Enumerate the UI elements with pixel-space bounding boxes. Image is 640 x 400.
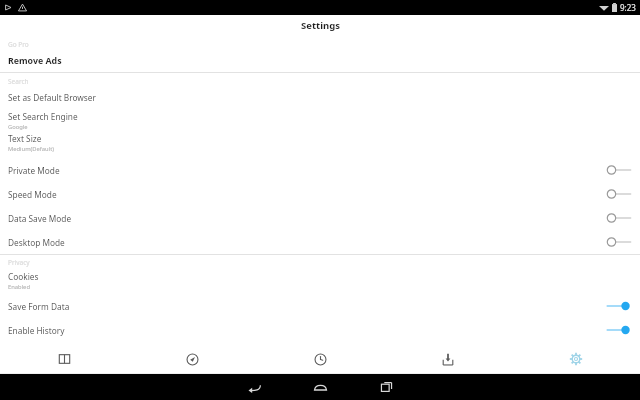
staticText: Google: [8, 123, 28, 130]
button[interactable]: Downloads: [384, 345, 512, 373]
button[interactable]: Recents: [364, 374, 408, 400]
button[interactable]: Enable History: [0, 318, 640, 342]
staticText: Save Form Data: [8, 301, 70, 312]
staticText: Go Pro: [8, 40, 29, 49]
button[interactable]: Data Save Mode: [0, 206, 640, 230]
staticText: Cookies: [8, 271, 39, 282]
button[interactable]: Bookmarks: [0, 345, 128, 373]
staticText: Enabled: [8, 283, 30, 290]
staticText: Set as Default Browser: [8, 92, 96, 103]
staticText: Desktop Mode: [8, 237, 65, 248]
staticText: Private Mode: [8, 165, 60, 176]
staticText: Privacy: [8, 258, 30, 267]
button[interactable]: Settings: [512, 345, 640, 373]
button[interactable]: History: [256, 345, 384, 373]
button[interactable]: Home: [298, 374, 342, 400]
button[interactable]: Back: [232, 374, 276, 400]
button[interactable]: Cookies: [0, 268, 640, 290]
staticText: Remove Ads: [8, 55, 62, 67]
button[interactable]: Private Mode: [0, 158, 640, 182]
staticText: Enable History: [8, 325, 65, 336]
staticText: Settings: [301, 19, 340, 32]
button[interactable]: Set Search Engine: [0, 108, 640, 130]
button[interactable]: Desktop Mode: [0, 230, 640, 254]
staticText: Speed Mode: [8, 189, 57, 200]
button[interactable]: Remove Ads: [0, 50, 640, 72]
staticText: Data Save Mode: [8, 213, 72, 224]
staticText: Medium(Default): [8, 145, 54, 152]
staticText: Search: [8, 77, 29, 86]
button[interactable]: Set as Default Browser: [0, 87, 640, 108]
button[interactable]: Explore: [128, 345, 256, 373]
staticText: 9:23: [620, 2, 636, 13]
button[interactable]: Save Form Data: [0, 294, 640, 318]
button[interactable]: Text Size: [0, 130, 640, 152]
staticText: Text Size: [8, 133, 42, 144]
staticText: Set Search Engine: [8, 111, 78, 122]
button[interactable]: Speed Mode: [0, 182, 640, 206]
